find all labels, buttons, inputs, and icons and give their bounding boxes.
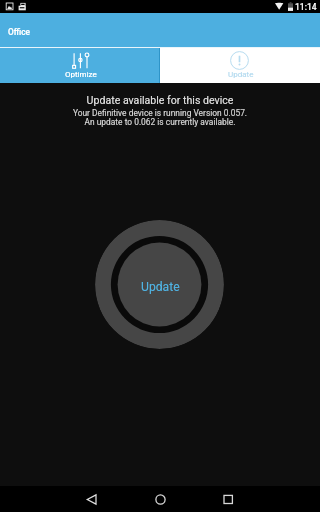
staticText: Office xyxy=(8,27,30,37)
staticText: Your Definitive device is running Versio… xyxy=(0,108,320,127)
staticText: Update available for this device xyxy=(0,94,320,106)
staticText: Optimize xyxy=(65,70,97,79)
button[interactable]: Home xyxy=(145,486,175,512)
button[interactable]: Update xyxy=(95,220,224,349)
staticText: Update xyxy=(228,70,254,79)
button[interactable]: Recents xyxy=(213,486,243,512)
button[interactable]: Back xyxy=(76,486,106,512)
button[interactable]: Update xyxy=(160,48,320,83)
staticText: 11:14 xyxy=(295,2,317,12)
staticText: Update xyxy=(141,280,180,294)
button[interactable]: Optimize xyxy=(0,48,159,83)
